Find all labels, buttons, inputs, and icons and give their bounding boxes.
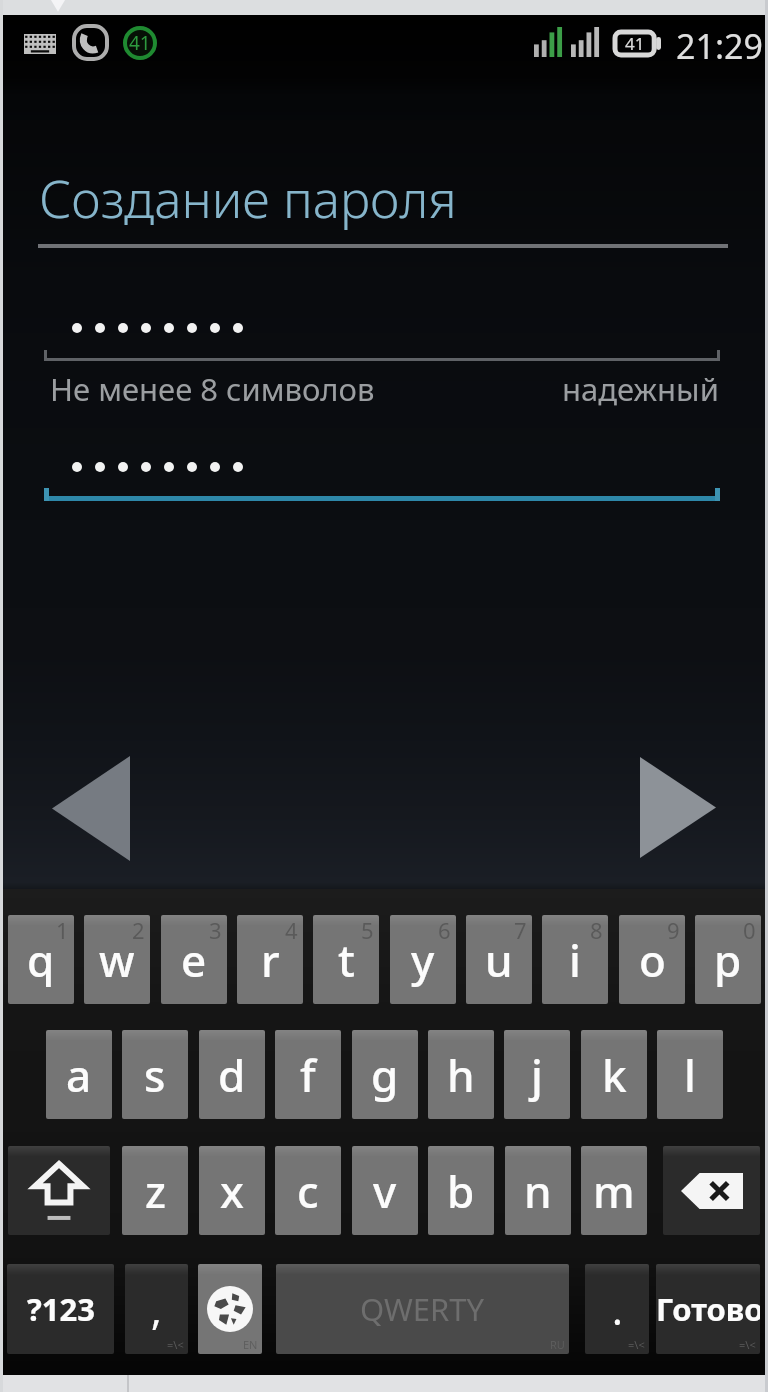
staticText: 6 bbox=[438, 915, 451, 945]
staticText: Не менее 8 символов bbox=[50, 368, 375, 410]
button[interactable]: y bbox=[390, 915, 456, 1004]
staticText: 0 bbox=[743, 915, 756, 945]
button[interactable]: x bbox=[199, 1146, 265, 1235]
staticText: Готово bbox=[656, 1288, 760, 1330]
staticText: o bbox=[639, 930, 666, 990]
button[interactable]: k bbox=[581, 1030, 647, 1119]
staticText: 7 bbox=[514, 915, 527, 945]
staticText: Создание пароля bbox=[39, 163, 457, 232]
button[interactable]: j bbox=[504, 1030, 570, 1119]
button[interactable]: Готово bbox=[656, 1264, 760, 1354]
staticText: e bbox=[181, 930, 207, 990]
button[interactable]: a bbox=[46, 1030, 112, 1119]
staticText: =\< bbox=[739, 1337, 756, 1352]
staticText: . bbox=[612, 1282, 623, 1336]
staticText: m bbox=[593, 1161, 635, 1221]
button[interactable]: Previous bbox=[40, 744, 142, 874]
staticText: w bbox=[99, 930, 135, 990]
button[interactable]: f bbox=[275, 1030, 341, 1119]
button[interactable]: Next bbox=[628, 745, 730, 875]
button[interactable]: Change language bbox=[198, 1264, 262, 1354]
staticText: a bbox=[66, 1045, 92, 1105]
staticText: RU bbox=[550, 1337, 565, 1352]
button[interactable]: Space bbox=[276, 1264, 569, 1354]
staticText: , bbox=[151, 1282, 162, 1336]
button[interactable]: i bbox=[542, 915, 608, 1004]
staticText: 4 bbox=[285, 915, 298, 945]
button[interactable]: q bbox=[8, 915, 74, 1004]
staticText: v bbox=[373, 1161, 397, 1221]
staticText: =\< bbox=[167, 1337, 184, 1352]
staticText: надежный bbox=[562, 368, 719, 410]
staticText: p bbox=[714, 930, 742, 990]
staticText: ?123 bbox=[27, 1288, 95, 1330]
staticText: i bbox=[569, 930, 581, 990]
staticText: 9 bbox=[667, 915, 680, 945]
button[interactable]: g bbox=[352, 1030, 418, 1119]
button[interactable]: d bbox=[199, 1030, 265, 1119]
staticText: 41 bbox=[129, 30, 151, 56]
staticText: g bbox=[371, 1045, 399, 1105]
staticText: QWERTY bbox=[360, 1288, 485, 1330]
button[interactable]: t bbox=[313, 915, 379, 1004]
button[interactable]: ?123 bbox=[7, 1264, 114, 1354]
staticText: 3 bbox=[209, 915, 222, 945]
button[interactable]: o bbox=[619, 915, 685, 1004]
staticText: y bbox=[411, 930, 435, 990]
button[interactable]: p bbox=[695, 915, 761, 1004]
button[interactable]: b bbox=[428, 1146, 494, 1235]
button[interactable]: , bbox=[125, 1264, 188, 1354]
button[interactable]: s bbox=[122, 1030, 188, 1119]
staticText: 1 bbox=[56, 915, 69, 945]
staticText: 21:29 bbox=[676, 23, 763, 69]
button[interactable]: Shift bbox=[8, 1146, 110, 1235]
button[interactable]: Backspace bbox=[663, 1146, 760, 1235]
staticText: k bbox=[602, 1045, 627, 1105]
staticText: j bbox=[531, 1045, 543, 1105]
staticText: l bbox=[684, 1045, 696, 1105]
button[interactable]: r bbox=[237, 915, 303, 1004]
button[interactable]: u bbox=[466, 915, 532, 1004]
staticText: n bbox=[524, 1161, 552, 1221]
staticText: x bbox=[220, 1161, 244, 1221]
staticText: r bbox=[261, 930, 280, 990]
staticText: u bbox=[485, 930, 513, 990]
button[interactable]: e bbox=[161, 915, 227, 1004]
button[interactable]: n bbox=[505, 1146, 571, 1235]
staticText: d bbox=[218, 1045, 246, 1105]
staticText: z bbox=[145, 1161, 166, 1221]
staticText: c bbox=[297, 1161, 319, 1221]
button[interactable]: c bbox=[275, 1146, 341, 1235]
button[interactable]: v bbox=[352, 1146, 418, 1235]
button[interactable]: z bbox=[122, 1146, 188, 1235]
staticText: h bbox=[447, 1045, 475, 1105]
staticText: q bbox=[27, 930, 55, 990]
staticText: t bbox=[338, 930, 355, 990]
button[interactable]: l bbox=[657, 1030, 723, 1119]
button[interactable]: w bbox=[84, 915, 150, 1004]
staticText: b bbox=[447, 1161, 475, 1221]
staticText: s bbox=[144, 1045, 166, 1105]
staticText: f bbox=[300, 1045, 316, 1105]
staticText: 2 bbox=[132, 915, 145, 945]
button[interactable]: m bbox=[581, 1146, 647, 1235]
staticText: 5 bbox=[361, 915, 374, 945]
staticText: =\< bbox=[628, 1337, 645, 1352]
button[interactable]: h bbox=[428, 1030, 494, 1119]
staticText: 8 bbox=[590, 915, 603, 945]
button[interactable]: . bbox=[585, 1264, 649, 1354]
staticText: 41 bbox=[625, 32, 645, 55]
staticText: EN bbox=[243, 1337, 258, 1352]
